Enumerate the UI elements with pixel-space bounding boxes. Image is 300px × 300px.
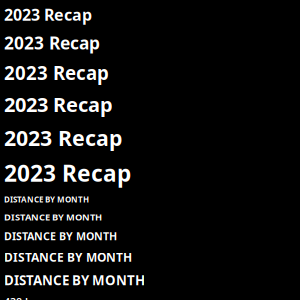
staticText: DISTANCE BY MONTH [4,229,117,243]
staticText: DISTANCE BY MONTH [4,249,132,265]
staticText: 2023 Recap [4,158,131,188]
staticText: DISTANCE BY MONTH [4,271,145,289]
staticText: 2023 Recap [4,124,122,152]
staticText: DISTANCE BY MONTH [4,194,89,205]
staticText: 2023 Recap [4,60,109,85]
staticText: 2023 Recap [4,31,100,54]
staticText: 438 km [4,295,41,300]
staticText: DISTANCE BY MONTH [4,211,102,223]
staticText: 2023 Recap [4,91,113,118]
staticText: 2023 Recap [4,4,92,25]
